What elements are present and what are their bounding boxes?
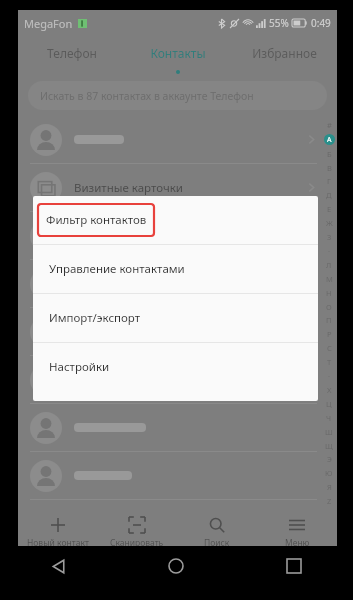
button[interactable]: Сканировать	[97, 510, 177, 556]
staticText: Ж	[326, 218, 333, 228]
staticText: Ш	[325, 427, 333, 437]
staticText: Г	[327, 176, 331, 186]
staticText: Фильтр контактов	[46, 212, 147, 228]
button[interactable]: Back	[0, 546, 117, 586]
staticText: В	[327, 163, 332, 173]
staticText: MegaFon	[24, 16, 73, 31]
button[interactable]: Home	[117, 546, 235, 586]
staticText: #	[327, 120, 332, 130]
staticText: 55%	[269, 16, 289, 30]
staticText: Импорт/экспорт	[49, 310, 141, 326]
staticText: Н	[326, 288, 332, 298]
button[interactable]	[18, 260, 337, 307]
staticText: Д	[326, 190, 332, 200]
staticText: М	[326, 274, 333, 284]
staticText: Ц	[326, 399, 332, 409]
button[interactable]	[18, 452, 337, 499]
button[interactable]: Импорт/экспорт	[33, 294, 318, 342]
staticText: Щ	[325, 441, 333, 451]
button[interactable]: Управление контактами	[33, 245, 318, 293]
staticText: Меню	[285, 537, 310, 549]
staticText: Л	[326, 260, 332, 270]
staticText: Я	[327, 482, 332, 492]
staticText: А	[327, 135, 332, 145]
staticText: Б	[327, 149, 332, 159]
button[interactable]: Настройки	[33, 343, 318, 391]
staticText: Управление контактами	[49, 261, 185, 277]
staticText: Т	[327, 357, 332, 367]
staticText: С	[327, 343, 332, 353]
staticText: О	[326, 302, 332, 312]
staticText: Сканировать	[110, 537, 164, 549]
staticText: Настройки	[49, 359, 110, 375]
button[interactable]: Избранное	[231, 36, 337, 70]
staticText: Р	[327, 329, 332, 339]
staticText: Х	[327, 385, 332, 395]
button[interactable]	[18, 404, 337, 451]
staticText: Ю	[325, 468, 333, 478]
button[interactable]: Телефон	[18, 36, 125, 70]
button[interactable]: Поиск	[177, 510, 257, 556]
button[interactable]	[18, 308, 337, 355]
staticText: Визитные карточки	[74, 180, 183, 196]
staticText: Поиск	[204, 537, 230, 549]
staticText: П	[326, 315, 332, 325]
button[interactable]: Визитные карточки	[18, 164, 337, 211]
staticText: 0:49	[311, 16, 331, 30]
button[interactable]: Контакты	[125, 36, 231, 70]
button[interactable]	[18, 212, 337, 259]
button[interactable]: Фильтр контактов	[33, 196, 318, 244]
staticText: З	[327, 232, 332, 242]
staticText: Телефон	[47, 45, 97, 61]
staticText: Новый контакт	[27, 537, 89, 549]
button[interactable]	[18, 356, 337, 403]
button[interactable]	[18, 116, 337, 163]
staticText: Контакты	[150, 45, 206, 61]
button[interactable]: Новый контакт	[18, 510, 97, 556]
button[interactable]: Recents	[235, 546, 353, 586]
staticText: Ч	[326, 413, 332, 423]
staticText: Э	[327, 454, 332, 464]
staticText: Z	[327, 496, 332, 506]
button[interactable]: Искать в 87 контактах в аккаунте Телефон	[28, 81, 327, 110]
staticText: Е	[327, 204, 332, 214]
button[interactable]: Меню	[257, 510, 337, 556]
staticText: Избранное	[252, 45, 317, 61]
staticText: Искать в 87 контактах в аккаунте Телефон	[40, 89, 254, 103]
button[interactable]: #	[321, 116, 337, 510]
